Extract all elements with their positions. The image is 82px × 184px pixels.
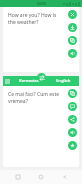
button[interactable]: Back: [12, 171, 24, 183]
button[interactable]: Favorite: [68, 141, 77, 150]
button[interactable]: Copy: [68, 89, 77, 98]
button[interactable]: Download: [68, 23, 77, 32]
button[interactable]: Home: [35, 171, 47, 183]
staticText: Ce mai faci? Cum este vremea?: [8, 91, 61, 105]
button[interactable]: Clear: [68, 10, 77, 19]
button[interactable]: Speak: [68, 128, 77, 137]
button[interactable]: Share: [68, 115, 77, 124]
button[interactable]: English: [48, 78, 79, 84]
button[interactable]: Recents: [59, 171, 71, 183]
staticText: English: [56, 78, 71, 84]
button[interactable]: Romanian: [10, 78, 48, 84]
button[interactable]: Chat: [68, 102, 77, 111]
staticText: How are you? How is the weather?: [8, 12, 61, 26]
button[interactable]: Copy: [68, 36, 77, 45]
button[interactable]: Speak: [68, 49, 77, 58]
staticText: Romanian: [19, 78, 40, 84]
button[interactable]: Swap languages: [37, 73, 46, 82]
